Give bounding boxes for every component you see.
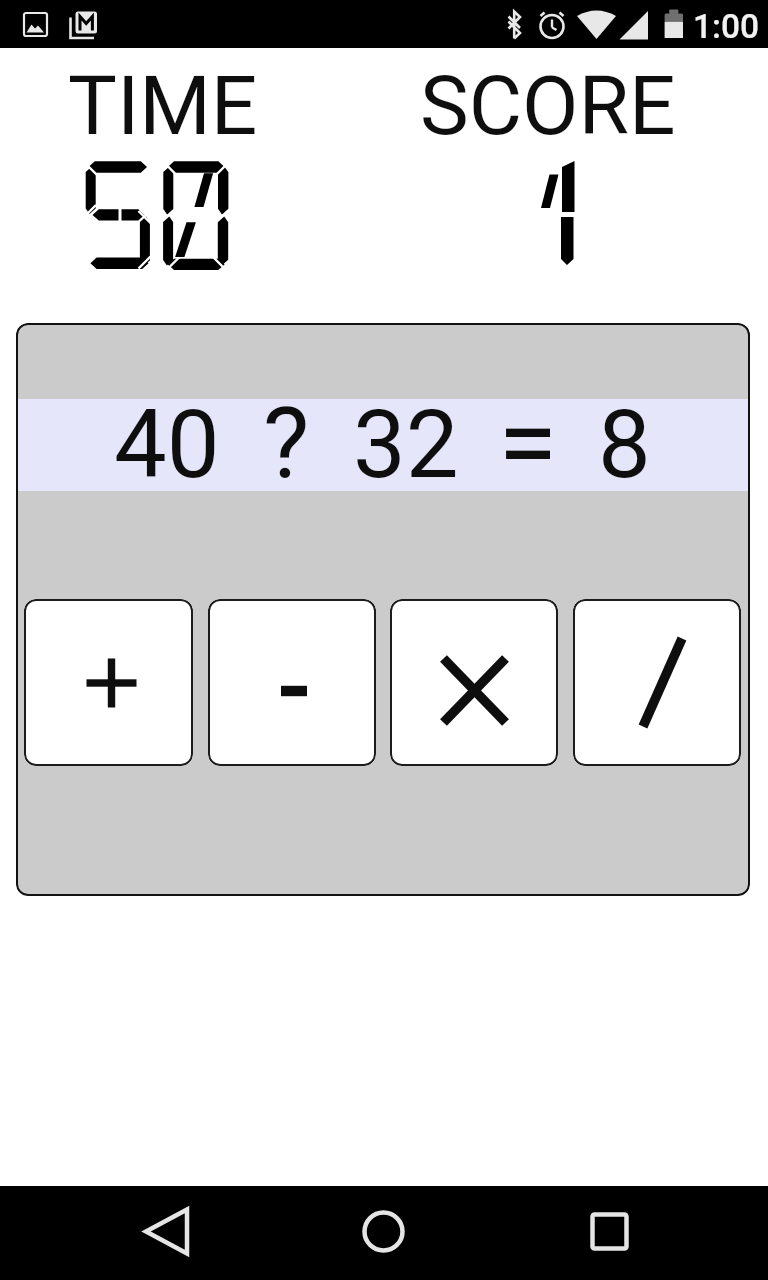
staticText: SCORE — [420, 58, 676, 154]
button[interactable] — [24, 599, 193, 766]
staticText: TIME — [68, 58, 258, 154]
button[interactable] — [390, 599, 558, 766]
staticText: ? — [263, 386, 310, 501]
staticText: 32 — [353, 390, 459, 500]
staticText: 40 — [114, 390, 220, 500]
button[interactable] — [573, 599, 741, 766]
staticText: = — [498, 380, 558, 507]
staticText: 1:00 — [693, 7, 760, 46]
button[interactable] — [208, 599, 376, 766]
staticText: 8 — [598, 390, 651, 500]
